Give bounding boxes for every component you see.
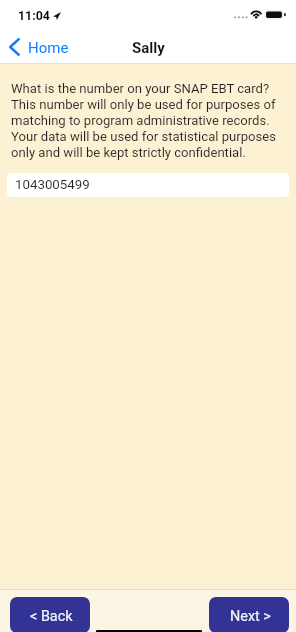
staticText: Home [28,39,69,57]
staticText: 1043005499 [15,177,90,193]
staticText: What is the number on your SNAP EBT card… [11,81,287,160]
button[interactable]: Next > [209,597,289,632]
button[interactable]: < Back [10,597,90,632]
button[interactable]: 1043005499 [7,173,289,197]
other: Back to Home [9,38,20,56]
button[interactable]: Back to Home [9,39,69,57]
staticText: Sally [132,39,165,57]
staticText: < Back [30,608,73,625]
staticText: Next > [230,608,271,625]
staticText: 11:04 [18,8,50,23]
